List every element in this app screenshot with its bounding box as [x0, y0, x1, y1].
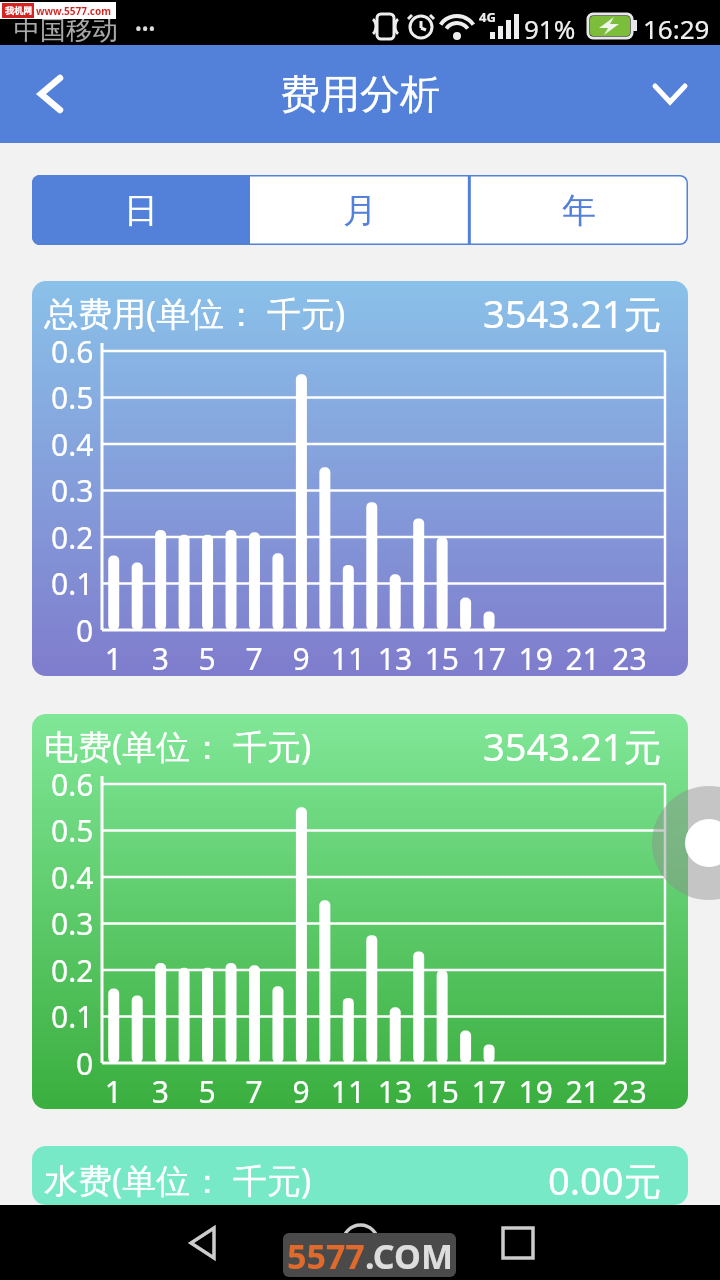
staticText: 4G — [479, 8, 496, 26]
staticText: 我机网 — [5, 5, 32, 16]
button[interactable] — [310, 1205, 410, 1280]
staticText: 月 — [343, 189, 377, 232]
button[interactable]: 水费(单位： 千元) — [32, 1146, 688, 1205]
staticText: 总费用(单位： 千元) — [44, 290, 346, 336]
staticText: 费用分析 — [280, 69, 440, 119]
staticText: 电费(单位： 千元) — [44, 723, 312, 769]
button[interactable] — [152, 1205, 252, 1280]
staticText: 5577 — [287, 1233, 365, 1277]
staticText: 中国移动 — [14, 14, 118, 47]
button[interactable]: 年 — [469, 175, 688, 245]
staticText: 3543.21元 — [483, 287, 662, 339]
button[interactable]: 月 — [250, 175, 469, 245]
staticText: 91% — [524, 11, 576, 46]
button[interactable]: 电费(单位： 千元) — [32, 714, 688, 1109]
staticText: www.5577.com — [36, 4, 111, 18]
button[interactable] — [468, 1205, 568, 1280]
staticText: 水费(单位： 千元) — [44, 1157, 312, 1203]
staticText: 3543.21元 — [483, 720, 662, 772]
staticText: .COM — [365, 1233, 453, 1277]
staticText: 16:29 — [643, 11, 710, 46]
staticText: ••• — [135, 16, 156, 41]
staticText: 年 — [562, 189, 596, 232]
button[interactable] — [15, 45, 85, 143]
button[interactable]: 日 — [32, 175, 250, 245]
button[interactable]: 总费用(单位： 千元) — [32, 281, 688, 676]
staticText: 0.00元 — [548, 1154, 662, 1205]
staticText: 日 — [124, 189, 158, 232]
button[interactable] — [635, 45, 705, 143]
